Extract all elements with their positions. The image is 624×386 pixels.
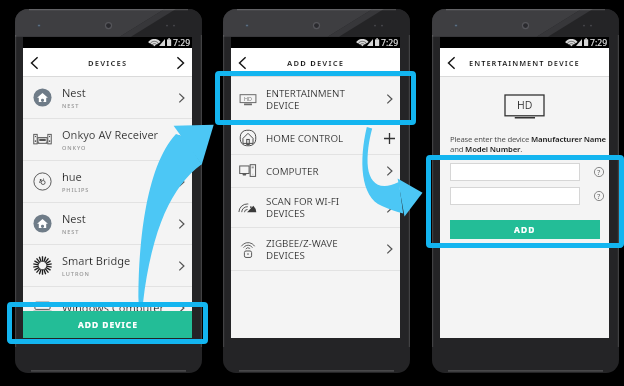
staticText: Please enter the device Manufacturer Nam…	[450, 134, 606, 154]
button[interactable]: Forward	[166, 49, 192, 77]
staticText: ?	[597, 167, 601, 177]
staticText: ENTERTAINMENT DEVICE	[469, 58, 580, 68]
staticText: DEVICES	[88, 58, 128, 68]
staticText: PHILIPS	[62, 186, 90, 194]
staticText: NEST	[62, 102, 80, 110]
staticText: Windows Computer	[62, 300, 165, 315]
button[interactable]: ADD DEVICE	[23, 311, 192, 338]
button[interactable]: Back	[231, 49, 257, 77]
staticText: ONKYO	[62, 144, 87, 152]
staticText: SCAN FOR WI-FI DEVICES	[266, 195, 384, 220]
staticText: ADD DEVICE	[287, 58, 345, 68]
staticText: hue	[62, 169, 82, 184]
staticText: ENTERTAINMENT DEVICE	[266, 87, 384, 112]
button[interactable]	[450, 163, 580, 181]
staticText: NEST	[62, 228, 80, 236]
staticText: 7:29	[590, 37, 608, 48]
staticText: 7:29	[173, 37, 191, 48]
staticText: COMPUTER	[266, 165, 384, 178]
staticText: HD	[517, 98, 533, 112]
staticText: LUTRON	[62, 270, 90, 278]
button[interactable]: hue	[23, 161, 192, 202]
staticText: ADD	[514, 224, 536, 235]
staticText: HOME CONTROL	[266, 132, 384, 145]
button[interactable]: Nest	[23, 77, 192, 118]
button[interactable]: ZIGBEE/Z-WAVE DEVICES	[231, 228, 400, 270]
button[interactable]: HOME CONTROL	[231, 122, 400, 154]
button[interactable]: Help	[594, 191, 604, 201]
button[interactable]: Smart Bridge	[23, 245, 192, 286]
staticText: HD	[244, 95, 252, 102]
button[interactable]: Help	[594, 167, 604, 177]
button[interactable]: Back	[440, 49, 466, 77]
staticText: 7:29	[381, 37, 399, 48]
staticText: Nest	[62, 85, 86, 100]
button[interactable]: HD	[231, 77, 400, 121]
button[interactable]	[450, 187, 580, 205]
staticText: Onkyo AV Receiver	[62, 127, 159, 142]
button[interactable]: Windows Computer	[23, 287, 192, 328]
button[interactable]: SCAN FOR WI-FI DEVICES	[231, 188, 400, 227]
staticText: ZIGBEE/Z-WAVE DEVICES	[266, 237, 384, 262]
button[interactable]: ADD	[450, 220, 600, 239]
button[interactable]: Back	[23, 49, 49, 77]
staticText: Smart Bridge	[62, 253, 131, 268]
button[interactable]: Onkyo AV Receiver	[23, 119, 192, 160]
staticText: Nest	[62, 211, 86, 226]
button[interactable]: COMPUTER	[231, 155, 400, 187]
staticText: ?	[597, 191, 601, 201]
staticText: ADD DEVICE	[78, 319, 138, 330]
button[interactable]: Nest	[23, 203, 192, 244]
